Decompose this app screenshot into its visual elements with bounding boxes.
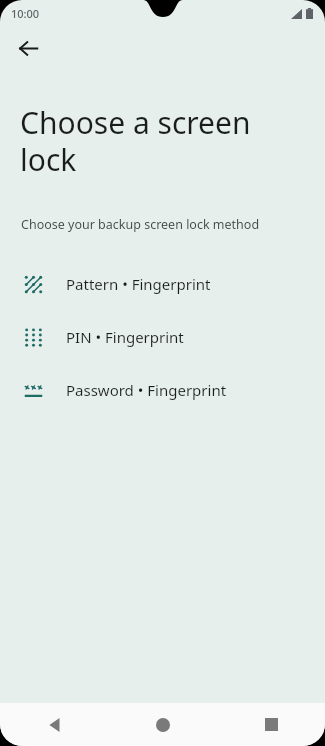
button[interactable]: Password • Fingerprint (0, 363, 325, 416)
button[interactable]: Recent apps (217, 703, 325, 746)
button[interactable]: Back (0, 703, 109, 746)
button[interactable]: Home (109, 703, 217, 746)
staticText: Choose your backup screen lock method (21, 216, 260, 233)
staticText: 10:00 (11, 6, 40, 21)
staticText: Choose a screen lock (20, 102, 285, 180)
button[interactable]: PIN • Fingerprint (0, 310, 325, 363)
staticText: PIN • Fingerprint (66, 327, 184, 347)
staticText: Password • Fingerprint (66, 380, 227, 400)
staticText: Pattern • Fingerprint (66, 274, 211, 294)
button[interactable]: Back (8, 28, 48, 68)
button[interactable]: Pattern • Fingerprint (0, 257, 325, 310)
